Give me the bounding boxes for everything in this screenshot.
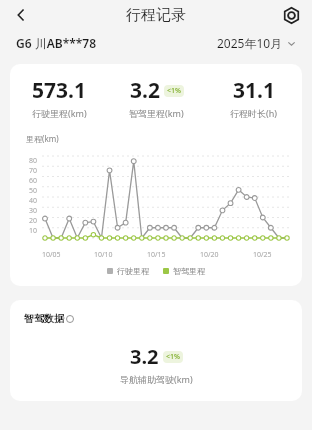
staticText: 10 bbox=[29, 226, 38, 236]
staticText: 20 bbox=[29, 216, 38, 226]
button[interactable]: Settings bbox=[276, 0, 306, 30]
staticText: <1% bbox=[167, 86, 181, 96]
staticText: G6 川AB***78 bbox=[16, 35, 97, 51]
button[interactable]: Back bbox=[6, 0, 36, 30]
staticText: 70 bbox=[29, 166, 38, 176]
staticText: 10/20 bbox=[200, 250, 219, 260]
button[interactable]: 3.2 bbox=[108, 76, 205, 119]
staticText: 573.1 bbox=[32, 76, 86, 105]
staticText: 导航辅助驾驶(km) bbox=[120, 373, 193, 385]
staticText: 60 bbox=[29, 176, 38, 186]
staticText: 行程记录 bbox=[126, 6, 186, 25]
staticText: 10/05 bbox=[42, 250, 61, 260]
staticText: 31.1 bbox=[233, 76, 275, 105]
staticText: 行程时长(h) bbox=[230, 107, 277, 119]
button[interactable]: 智驾数据 bbox=[24, 312, 74, 325]
staticText: <1% bbox=[166, 352, 180, 362]
staticText: 40 bbox=[29, 196, 38, 206]
staticText: 智驾里程 bbox=[173, 266, 205, 276]
button[interactable]: 31.1 bbox=[205, 76, 302, 119]
staticText: 50 bbox=[29, 186, 38, 196]
staticText: 10/15 bbox=[147, 250, 166, 260]
staticText: 智驾里程(km) bbox=[129, 107, 184, 119]
button[interactable]: G6 川AB***78 bbox=[16, 35, 97, 51]
staticText: 行驶里程 bbox=[117, 266, 149, 276]
staticText: 30 bbox=[29, 206, 38, 216]
staticText: 10/25 bbox=[253, 250, 272, 260]
staticText: 2025年10月 bbox=[217, 35, 283, 51]
button[interactable]: 573.1 bbox=[10, 76, 108, 119]
button[interactable]: 2025年10月 bbox=[217, 35, 296, 51]
staticText: 3.2 bbox=[130, 343, 159, 370]
staticText: 80 bbox=[29, 156, 38, 166]
staticText: 10/10 bbox=[94, 250, 113, 260]
staticText: 智驾数据 bbox=[24, 312, 64, 325]
staticText: 里程(km) bbox=[26, 133, 59, 144]
staticText: 3.2 bbox=[130, 76, 160, 105]
staticText: 行驶里程(km) bbox=[32, 107, 87, 119]
